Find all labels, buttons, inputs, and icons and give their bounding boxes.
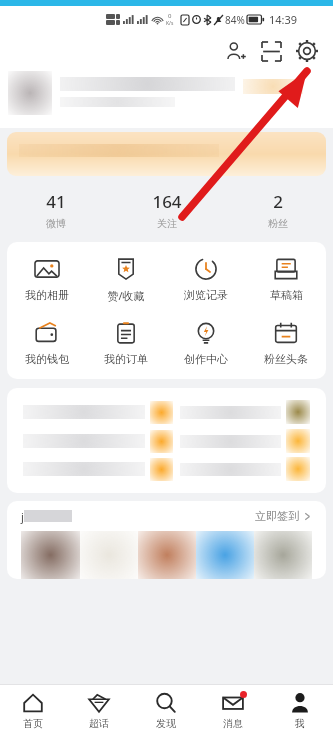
button[interactable]: 我的订单 — [86, 321, 166, 366]
button[interactable]: 我 — [266, 685, 333, 737]
staticText: 关注 — [157, 217, 177, 230]
button[interactable]: 164 — [111, 190, 222, 230]
button[interactable]: 首页 — [0, 685, 66, 737]
button[interactable] — [7, 132, 326, 176]
staticText: j — [21, 509, 24, 524]
staticText: 164 — [152, 190, 182, 213]
staticText: 我的订单 — [104, 352, 148, 366]
button[interactable]: 超话 — [66, 685, 132, 737]
staticText: 14:39 — [269, 12, 298, 27]
staticText: 立即签到 — [255, 509, 299, 523]
staticText: 微博 — [46, 217, 66, 230]
staticText: 首页 — [23, 717, 43, 730]
staticText: 84% — [225, 13, 245, 27]
staticText: 我 — [295, 717, 305, 730]
button[interactable]: 41 — [0, 190, 111, 230]
button[interactable]: 2 — [222, 190, 333, 230]
staticText: 我的钱包 — [25, 352, 69, 366]
staticText: 我的相册 — [25, 288, 69, 302]
staticText: 2 — [273, 190, 283, 213]
button[interactable]: Settings — [289, 33, 325, 69]
button[interactable]: 消息 — [199, 685, 266, 737]
staticText: 赞/收藏 — [107, 288, 145, 303]
button[interactable]: 发现 — [132, 685, 199, 737]
button[interactable]: 草稿箱 — [246, 257, 326, 302]
button[interactable] — [7, 388, 326, 493]
staticText: 消息 — [223, 717, 243, 730]
button[interactable]: 粉丝头条 — [246, 321, 326, 366]
button[interactable]: 赞/收藏 — [86, 257, 166, 303]
staticText: 草稿箱 — [270, 288, 303, 302]
button[interactable]: 我的相册 — [7, 257, 86, 302]
button[interactable]: Scan QR code — [253, 33, 289, 69]
button[interactable]: Add friend — [217, 33, 253, 69]
button[interactable]: 浏览记录 — [166, 257, 246, 302]
staticText: 发现 — [156, 717, 176, 730]
staticText: 粉丝 — [268, 217, 288, 230]
staticText: 0 — [168, 12, 172, 20]
staticText: 浏览记录 — [184, 288, 228, 302]
staticText: K/s — [166, 20, 174, 27]
button[interactable]: 创作中心 — [166, 321, 246, 366]
button[interactable]: j — [7, 501, 326, 531]
staticText: 粉丝头条 — [264, 352, 308, 366]
staticText: 创作中心 — [184, 352, 228, 366]
button[interactable]: 我的钱包 — [7, 321, 86, 366]
staticText: 41 — [46, 190, 66, 213]
staticText: 超话 — [89, 717, 109, 730]
